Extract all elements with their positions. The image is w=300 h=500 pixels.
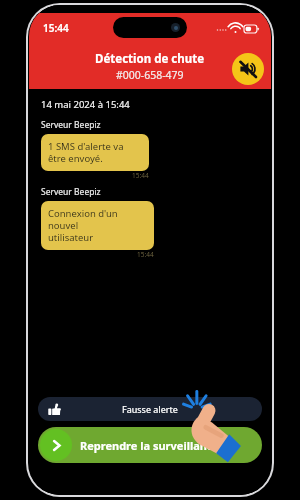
button[interactable]: Couper le son: [232, 53, 264, 85]
staticText: Détection de chute: [95, 51, 205, 67]
staticText: Reprendre la surveillance: [80, 438, 220, 453]
staticText: Serveur Beepiz: [41, 186, 101, 198]
staticText: 14 mai 2024 à 15:44: [41, 98, 130, 111]
button[interactable]: 1 SMS d'alerte va être envoyé.: [41, 134, 149, 171]
staticText: 15:44: [137, 250, 154, 259]
button[interactable]: Connexion d'un nouvel utilisateur: [41, 201, 154, 250]
staticText: 15:44: [132, 171, 149, 180]
staticText: Serveur Beepiz: [41, 119, 101, 131]
staticText: 1 SMS d'alerte va être envoyé.: [48, 140, 124, 165]
button[interactable]: Reprendre la surveillance: [38, 427, 262, 463]
staticText: Fausse alerte: [122, 403, 178, 415]
staticText: 15:44: [43, 21, 69, 35]
staticText: Connexion d'un nouvel utilisateur: [48, 207, 147, 244]
staticText: #000-658-479: [116, 68, 184, 82]
button[interactable]: Fausse alerte: [38, 397, 262, 421]
